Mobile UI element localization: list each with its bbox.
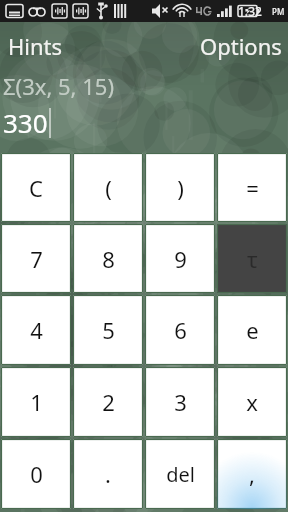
button[interactable]: Options: [144, 22, 288, 70]
button[interactable]: Hints: [0, 22, 144, 70]
staticText: 1:32: [238, 3, 262, 19]
button[interactable]: C: [1, 153, 71, 222]
staticText: τ: [247, 244, 258, 274]
staticText: PM: [272, 6, 285, 17]
staticText: ,: [249, 459, 255, 489]
staticText: x: [246, 387, 258, 417]
staticText: ): [177, 173, 184, 203]
button[interactable]: .: [73, 439, 143, 509]
staticText: Options: [200, 31, 282, 61]
button[interactable]: x: [217, 367, 287, 437]
staticText: 4: [30, 315, 43, 345]
staticText: 6: [174, 315, 187, 345]
staticText: (: [105, 173, 112, 203]
button[interactable]: ,: [217, 439, 287, 509]
button[interactable]: Σ(3x, 5, 15): [0, 70, 288, 152]
staticText: 9: [174, 244, 187, 274]
staticText: .: [105, 459, 111, 489]
button[interactable]: =: [217, 153, 287, 222]
button[interactable]: 0: [1, 439, 71, 509]
staticText: Σ(3x, 5, 15): [3, 71, 114, 101]
staticText: 8: [102, 244, 115, 274]
button[interactable]: τ: [217, 224, 287, 293]
button[interactable]: 4: [1, 295, 71, 365]
button[interactable]: 5: [73, 295, 143, 365]
button[interactable]: 3: [145, 367, 215, 437]
button[interactable]: 1: [1, 367, 71, 437]
staticText: del: [166, 461, 195, 488]
button[interactable]: e: [217, 295, 287, 365]
staticText: C: [29, 173, 43, 203]
staticText: 2: [102, 387, 115, 417]
staticText: =: [246, 173, 259, 203]
staticText: 0: [30, 459, 43, 489]
staticText: 1: [30, 387, 43, 417]
button[interactable]: ): [145, 153, 215, 222]
staticText: 7: [30, 244, 43, 274]
button[interactable]: 6: [145, 295, 215, 365]
button[interactable]: 2: [73, 367, 143, 437]
staticText: 5: [102, 315, 115, 345]
button[interactable]: del: [145, 439, 215, 509]
button[interactable]: 9: [145, 224, 215, 293]
staticText: e: [246, 315, 259, 345]
button[interactable]: 7: [1, 224, 71, 293]
staticText: 3: [174, 387, 187, 417]
staticText: 330: [3, 105, 48, 140]
button[interactable]: (: [73, 153, 143, 222]
staticText: Hints: [8, 31, 63, 61]
button[interactable]: 8: [73, 224, 143, 293]
